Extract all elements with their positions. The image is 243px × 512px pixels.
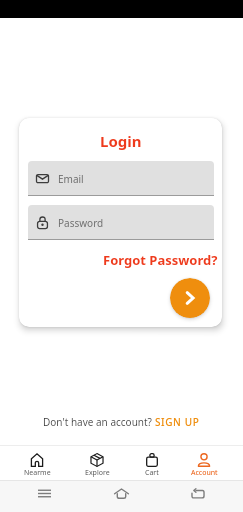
staticText: Nearme xyxy=(24,468,51,478)
button[interactable]: Forgot Password? xyxy=(103,251,218,269)
button[interactable] xyxy=(191,487,205,501)
button[interactable]: Password xyxy=(28,205,214,240)
button[interactable]: Nearme xyxy=(12,446,62,480)
staticText: Don't have an account? xyxy=(43,415,155,429)
button[interactable]: Cart xyxy=(127,446,177,480)
button[interactable]: Email xyxy=(28,161,214,196)
button[interactable]: Explore xyxy=(72,446,122,480)
button[interactable] xyxy=(38,487,51,500)
staticText: Login xyxy=(100,131,142,151)
button[interactable]: Account xyxy=(179,446,229,480)
staticText: Explore xyxy=(85,468,110,478)
staticText: Account xyxy=(191,468,218,478)
button[interactable] xyxy=(170,278,210,318)
staticText: Cart xyxy=(145,468,159,478)
staticText: Email xyxy=(58,172,84,186)
staticText: SIGN UP xyxy=(155,415,200,429)
button[interactable]: Don't have an account? xyxy=(43,415,200,429)
button[interactable] xyxy=(114,486,129,501)
staticText: Password xyxy=(58,216,104,230)
